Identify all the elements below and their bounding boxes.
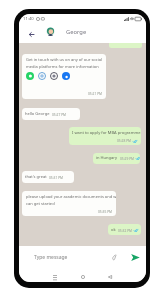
staticText: George xyxy=(66,28,87,36)
staticText: in Hungary xyxy=(96,155,118,161)
staticText: 05:28 PM xyxy=(117,139,132,143)
staticText: 05:29 PM xyxy=(120,157,135,161)
other: Attach file xyxy=(112,253,116,260)
staticText: 05:35 PM xyxy=(98,210,113,214)
button[interactable]: Back xyxy=(104,271,116,282)
button[interactable]: Profile photo xyxy=(46,27,55,36)
button[interactable]: Home xyxy=(77,271,89,282)
button[interactable]: Recent apps xyxy=(49,271,61,282)
button[interactable]: hello George xyxy=(22,108,80,120)
button[interactable]: Get in touch with us on any of our socia… xyxy=(22,54,106,99)
staticText: 05:27 PM xyxy=(52,113,67,117)
staticText: hello George xyxy=(25,111,50,117)
staticText: 11:40 xyxy=(23,16,34,22)
button[interactable]: Social media link xyxy=(50,72,58,80)
staticText: Type message xyxy=(34,254,68,261)
staticText: that's great xyxy=(25,174,47,180)
staticText: 05:32 PM xyxy=(118,229,133,233)
button[interactable]: I want to apply for MBA programme xyxy=(69,127,141,145)
button[interactable]: that's great xyxy=(22,171,74,183)
button[interactable]: Social media link xyxy=(26,72,34,80)
button[interactable]: Social media link xyxy=(38,72,46,80)
button[interactable]: Send xyxy=(127,249,143,265)
button[interactable]: Type message xyxy=(27,249,125,265)
staticText: 05:31 PM xyxy=(49,176,64,180)
button[interactable]: ok xyxy=(108,224,141,235)
button[interactable]: in Hungary xyxy=(93,153,140,164)
staticText: 05:21 PM xyxy=(88,92,103,96)
button[interactable]: please upload your academic documents an… xyxy=(22,191,116,216)
button[interactable]: Back xyxy=(25,28,37,40)
button[interactable]: Social media link xyxy=(62,72,70,80)
staticText: ok xyxy=(111,227,116,233)
staticText: please upload your academic documents an… xyxy=(26,194,116,206)
staticText: Get in touch with us on any of our socia… xyxy=(26,57,106,69)
staticText: I want to apply for MBA programme xyxy=(72,130,141,136)
